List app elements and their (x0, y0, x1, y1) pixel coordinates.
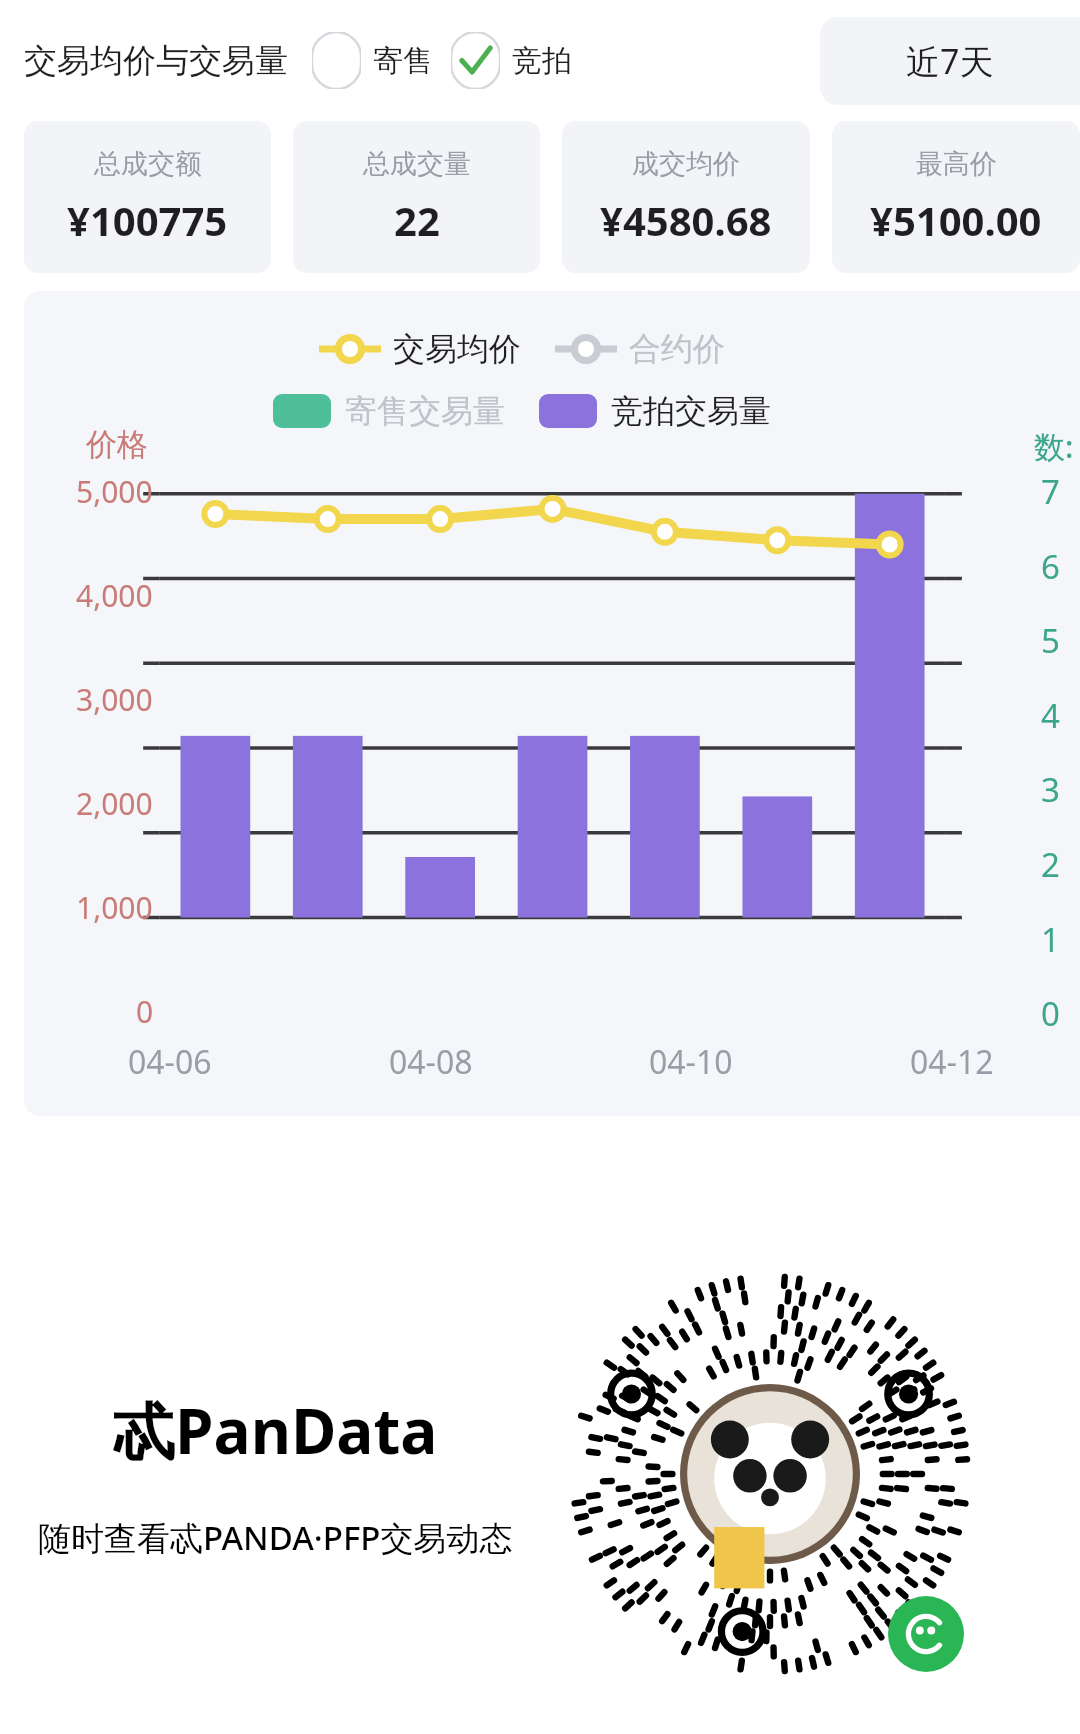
staticText: 最高价 (916, 147, 997, 181)
staticText: 04-12 (910, 1040, 994, 1084)
staticText: 3,000 (76, 679, 153, 720)
staticText: 1 (1041, 917, 1060, 962)
staticText: 总成交额 (94, 147, 202, 181)
staticText: 寄售交易量 (345, 391, 505, 431)
staticText: 数: (1034, 425, 1074, 467)
button[interactable]: 成交均价 (562, 121, 810, 273)
staticText: 近7天 (906, 38, 994, 84)
button[interactable]: 竞拍 (451, 32, 572, 89)
button[interactable]: 总成交量 (293, 121, 540, 273)
staticText: 04-10 (649, 1040, 733, 1084)
staticText: 04-06 (128, 1040, 212, 1084)
staticText: ¥5100.00 (870, 193, 1042, 247)
staticText: ¥4580.68 (600, 193, 772, 247)
staticText: 2 (1041, 842, 1060, 887)
staticText: 0 (136, 991, 154, 1032)
button[interactable]: 近7天 (820, 17, 1080, 105)
staticText: 2,000 (76, 783, 153, 824)
button[interactable]: 合约价 (555, 329, 725, 369)
staticText: 4,000 (76, 575, 153, 616)
staticText: 5 (1041, 618, 1060, 663)
staticText: 交易均价 (393, 329, 521, 369)
staticText: ¥100775 (67, 193, 228, 247)
staticText: 寄售 (373, 42, 433, 80)
staticText: 交易均价与交易量 (24, 40, 288, 82)
staticText: 3 (1041, 767, 1060, 812)
staticText: 04-08 (389, 1040, 473, 1084)
staticText: 4 (1041, 693, 1060, 738)
staticText: 竞拍交易量 (611, 391, 771, 431)
button[interactable]: 竞拍交易量 (539, 391, 771, 431)
staticText: 合约价 (629, 329, 725, 369)
staticText: 1,000 (76, 887, 153, 928)
button[interactable]: WeChat Mini Program (888, 1596, 964, 1672)
staticText: 竞拍 (512, 42, 572, 80)
staticText: 7 (1041, 469, 1060, 514)
button[interactable]: 最高价 (832, 121, 1080, 273)
staticText: 价格 (86, 425, 148, 464)
staticText: 5,000 (76, 471, 153, 512)
staticText: 22 (394, 193, 440, 247)
staticText: 成交均价 (632, 147, 740, 181)
staticText: 0 (1041, 991, 1060, 1036)
button[interactable]: 寄售交易量 (273, 391, 505, 431)
staticText: 6 (1041, 544, 1060, 589)
staticText: 忒PanData (113, 1388, 438, 1473)
button[interactable]: 总成交额 (24, 121, 271, 273)
staticText: 总成交量 (363, 147, 471, 181)
button[interactable]: 交易均价 (319, 329, 521, 369)
button[interactable]: 寄售 (312, 32, 433, 89)
staticText: 随时查看忒PANDA·PFP交易动态 (38, 1515, 513, 1560)
